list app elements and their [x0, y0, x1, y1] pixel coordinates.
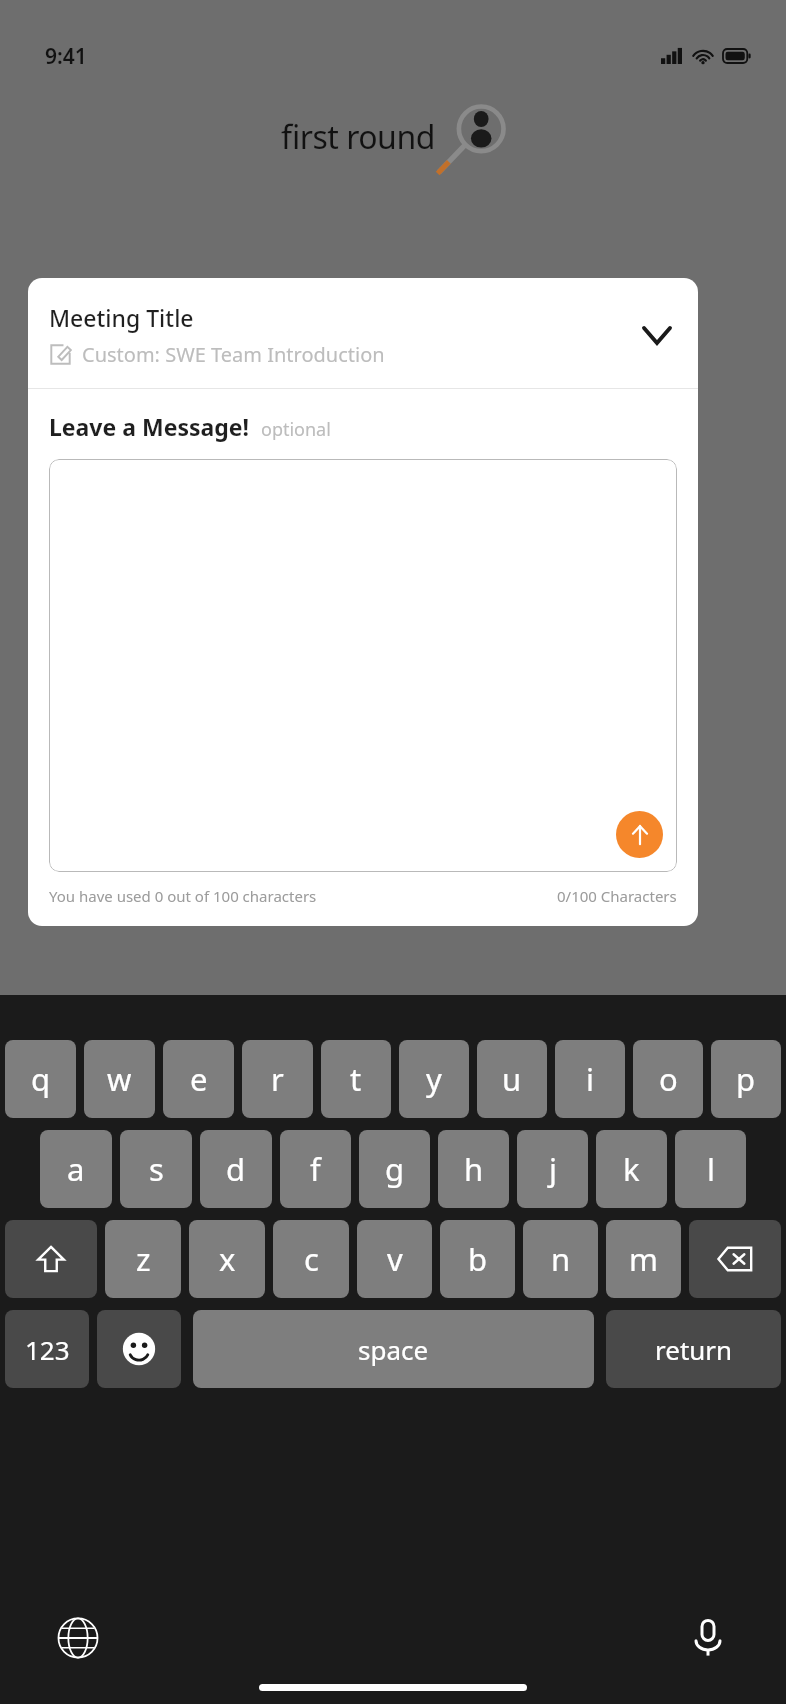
staticText: d: [226, 1148, 246, 1190]
staticText: u: [502, 1058, 522, 1100]
button[interactable]: r: [242, 1040, 313, 1118]
staticText: q: [31, 1058, 51, 1100]
staticText: return: [655, 1332, 733, 1367]
button[interactable]: e: [163, 1040, 234, 1118]
button[interactable]: c: [273, 1220, 349, 1298]
button[interactable]: q: [5, 1040, 76, 1118]
button[interactable]: s: [120, 1130, 192, 1208]
staticText: o: [659, 1058, 678, 1100]
staticText: n: [551, 1238, 571, 1280]
staticText: y: [426, 1058, 442, 1100]
button[interactable]: k: [596, 1130, 667, 1208]
staticText: p: [736, 1058, 756, 1100]
staticText: x: [219, 1238, 236, 1280]
button[interactable]: return: [606, 1310, 781, 1388]
button[interactable]: o: [633, 1040, 703, 1118]
button[interactable]: a: [40, 1130, 112, 1208]
button[interactable]: u: [477, 1040, 547, 1118]
button[interactable]: j: [517, 1130, 588, 1208]
button[interactable]: w: [84, 1040, 155, 1118]
button[interactable]: Send message: [616, 811, 663, 858]
staticText: space: [358, 1332, 429, 1367]
staticText: l: [707, 1148, 715, 1190]
staticText: 9:41: [45, 42, 87, 71]
staticText: Leave a Message!: [49, 411, 250, 442]
button[interactable]: i: [555, 1040, 625, 1118]
staticText: h: [464, 1148, 484, 1190]
button[interactable]: l: [675, 1130, 746, 1208]
button[interactable]: Shift: [5, 1220, 97, 1298]
staticText: w: [107, 1058, 132, 1100]
staticText: v: [387, 1238, 403, 1280]
staticText: e: [190, 1058, 208, 1100]
button[interactable]: h: [438, 1130, 509, 1208]
button[interactable]: space: [193, 1310, 594, 1388]
staticText: i: [586, 1058, 594, 1100]
staticText: 0/100 Characters: [557, 886, 677, 906]
button[interactable]: d: [200, 1130, 272, 1208]
staticText: g: [385, 1148, 405, 1190]
button[interactable]: Voice input: [680, 1610, 736, 1666]
staticText: t: [350, 1058, 362, 1100]
button[interactable]: n: [523, 1220, 598, 1298]
staticText: b: [468, 1238, 488, 1280]
button[interactable]: g: [359, 1130, 430, 1208]
staticText: first round: [281, 115, 435, 159]
button[interactable]: Meeting Title: [28, 278, 698, 388]
button[interactable]: z: [105, 1220, 181, 1298]
button[interactable]: Expand meeting title: [637, 315, 677, 355]
button[interactable]: Backspace: [689, 1220, 781, 1298]
staticText: f: [310, 1148, 321, 1190]
staticText: s: [149, 1148, 164, 1190]
staticText: Meeting Title: [49, 302, 194, 333]
button[interactable]: v: [357, 1220, 432, 1298]
staticText: Custom: SWE Team Introduction: [82, 341, 385, 368]
staticText: You have used 0 out of 100 characters: [49, 886, 317, 906]
button[interactable]: m: [606, 1220, 681, 1298]
button[interactable]: f: [280, 1130, 351, 1208]
staticText: c: [304, 1238, 319, 1280]
staticText: m: [629, 1238, 658, 1280]
staticText: a: [67, 1148, 85, 1190]
button[interactable]: Send message: [49, 459, 677, 872]
button[interactable]: Change keyboard language: [50, 1610, 106, 1666]
button[interactable]: Emoji: [97, 1310, 181, 1388]
staticText: r: [271, 1058, 284, 1100]
staticText: 123: [25, 1332, 70, 1367]
staticText: k: [623, 1148, 640, 1190]
button[interactable]: x: [189, 1220, 265, 1298]
button[interactable]: y: [399, 1040, 469, 1118]
staticText: z: [136, 1238, 151, 1280]
staticText: j: [549, 1148, 557, 1190]
button[interactable]: 123: [5, 1310, 89, 1388]
button[interactable]: b: [440, 1220, 515, 1298]
button[interactable]: p: [711, 1040, 781, 1118]
staticText: optional: [261, 417, 331, 442]
button[interactable]: t: [321, 1040, 391, 1118]
